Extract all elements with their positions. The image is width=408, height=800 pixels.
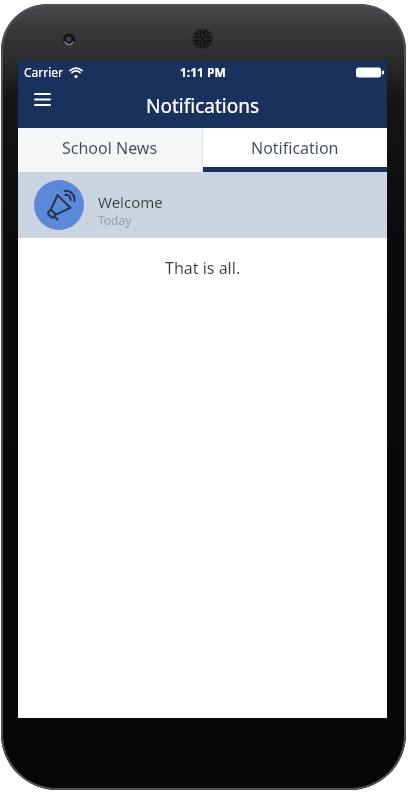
staticText: Notifications	[146, 93, 260, 119]
button[interactable]: Welcome	[18, 172, 387, 238]
staticText: Today	[98, 212, 132, 228]
button[interactable]	[24, 81, 60, 117]
staticText: Welcome	[98, 192, 163, 212]
staticText: 1:11 PM	[180, 64, 226, 80]
button[interactable]: Notification	[203, 128, 387, 172]
staticText: Carrier	[24, 64, 64, 80]
staticText: School News	[62, 137, 158, 159]
staticText: Notification	[251, 137, 339, 159]
button[interactable]: School News	[18, 128, 202, 172]
staticText: That is all.	[165, 257, 241, 279]
